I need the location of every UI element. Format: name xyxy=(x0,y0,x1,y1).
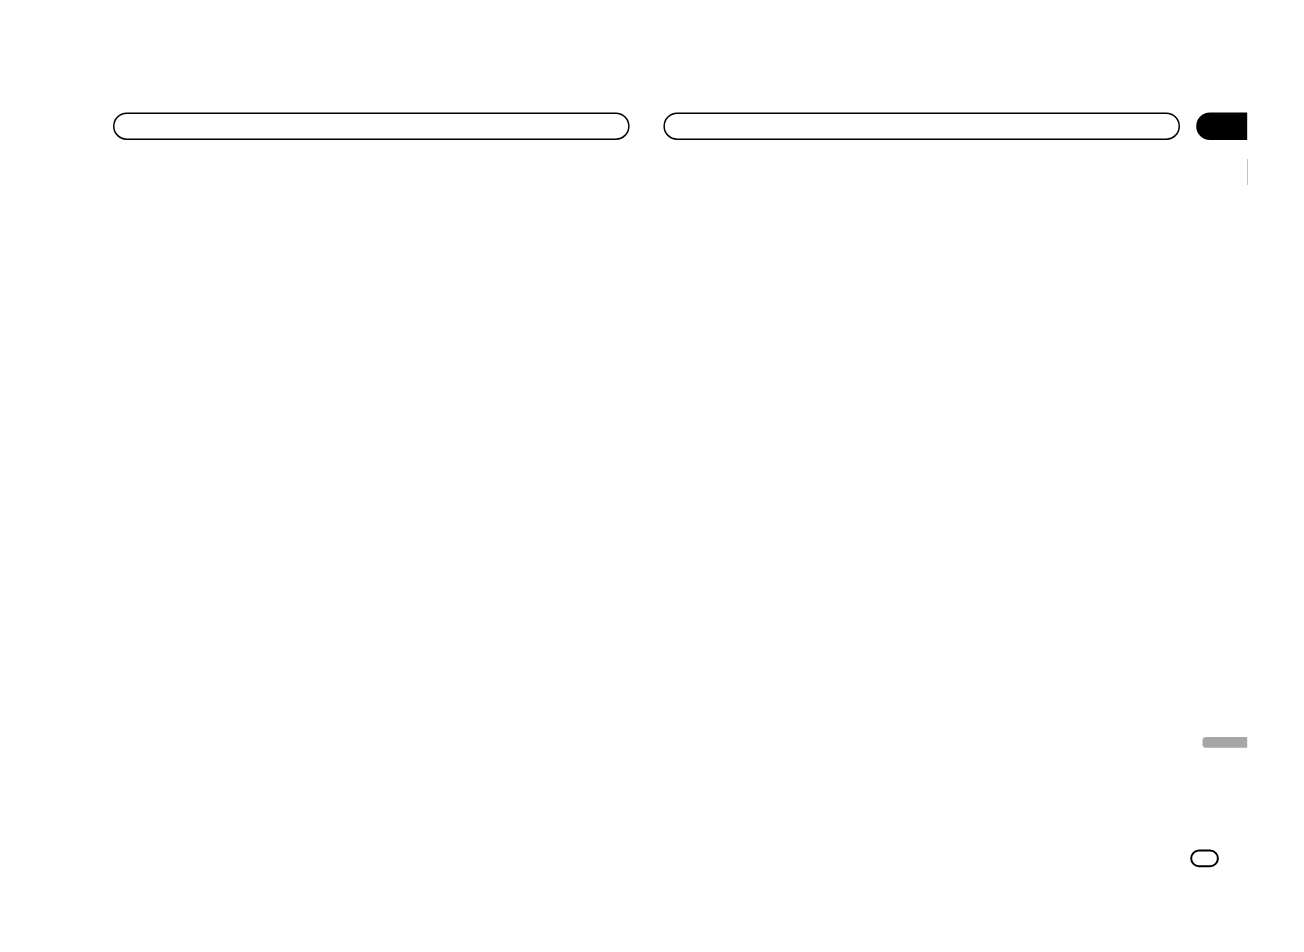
button[interactable]: Progress xyxy=(1203,737,1248,748)
button[interactable]: Selected chip xyxy=(1196,113,1247,140)
button[interactable]: Field two xyxy=(663,113,1180,140)
button[interactable]: Field one xyxy=(113,113,630,140)
button[interactable]: Badge xyxy=(1190,850,1219,868)
